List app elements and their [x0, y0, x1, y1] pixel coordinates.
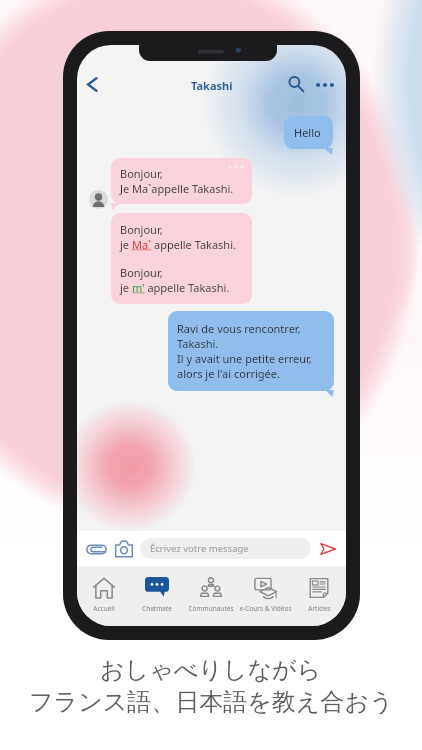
staticText: Bonjour,	[120, 265, 163, 280]
button[interactable]: Camera	[111, 536, 137, 562]
staticText: Hello	[294, 125, 321, 140]
button[interactable]: Articles	[292, 566, 346, 626]
staticText: おしゃべりしながら	[100, 655, 322, 685]
staticText: Écrivez votre message	[150, 542, 249, 555]
staticText: Je Ma`appelle Takashi.	[120, 181, 234, 196]
button[interactable]: Accueil	[77, 566, 130, 626]
staticText: Communautés	[188, 604, 234, 613]
staticText: je Ma` appelle Takashi.	[120, 237, 236, 252]
staticText: Chatmate	[142, 604, 172, 613]
button[interactable]: Communautés	[184, 566, 238, 626]
button[interactable]: Attach file	[83, 536, 109, 562]
button[interactable]: Send	[315, 536, 341, 562]
button[interactable]: e-Cours & Vidéos	[238, 566, 292, 626]
button[interactable]: More options	[313, 73, 337, 97]
staticText: Ravi de vous rencontrer,	[177, 321, 301, 336]
staticText: Articles	[308, 604, 331, 613]
staticText: フランス語、日本語を教え合おう	[29, 687, 394, 717]
button[interactable]: Ravi de vous rencontrer,	[168, 311, 334, 391]
staticText: Takashi.	[177, 336, 219, 351]
staticText: Il y avait une petite erreur,	[177, 351, 312, 366]
staticText: je m' appelle Takashi.	[120, 280, 230, 295]
button[interactable]: Bonjour,	[111, 158, 252, 204]
button[interactable]: Search	[285, 73, 307, 95]
staticText: Bonjour,	[120, 166, 163, 181]
staticText: Bonjour,	[120, 222, 163, 237]
button[interactable]: Chatmate	[130, 566, 184, 626]
staticText: alors je l'ai corrigée.	[177, 366, 280, 381]
button[interactable]: Hello	[284, 116, 333, 149]
staticText: Takashi	[191, 78, 233, 93]
staticText: Accueil	[93, 604, 115, 613]
staticText: e-Cours & Vidéos	[239, 604, 292, 613]
button[interactable]: Écrivez votre message	[140, 538, 311, 559]
button[interactable]: Back	[81, 73, 103, 95]
button[interactable]: Bonjour,	[111, 213, 252, 304]
